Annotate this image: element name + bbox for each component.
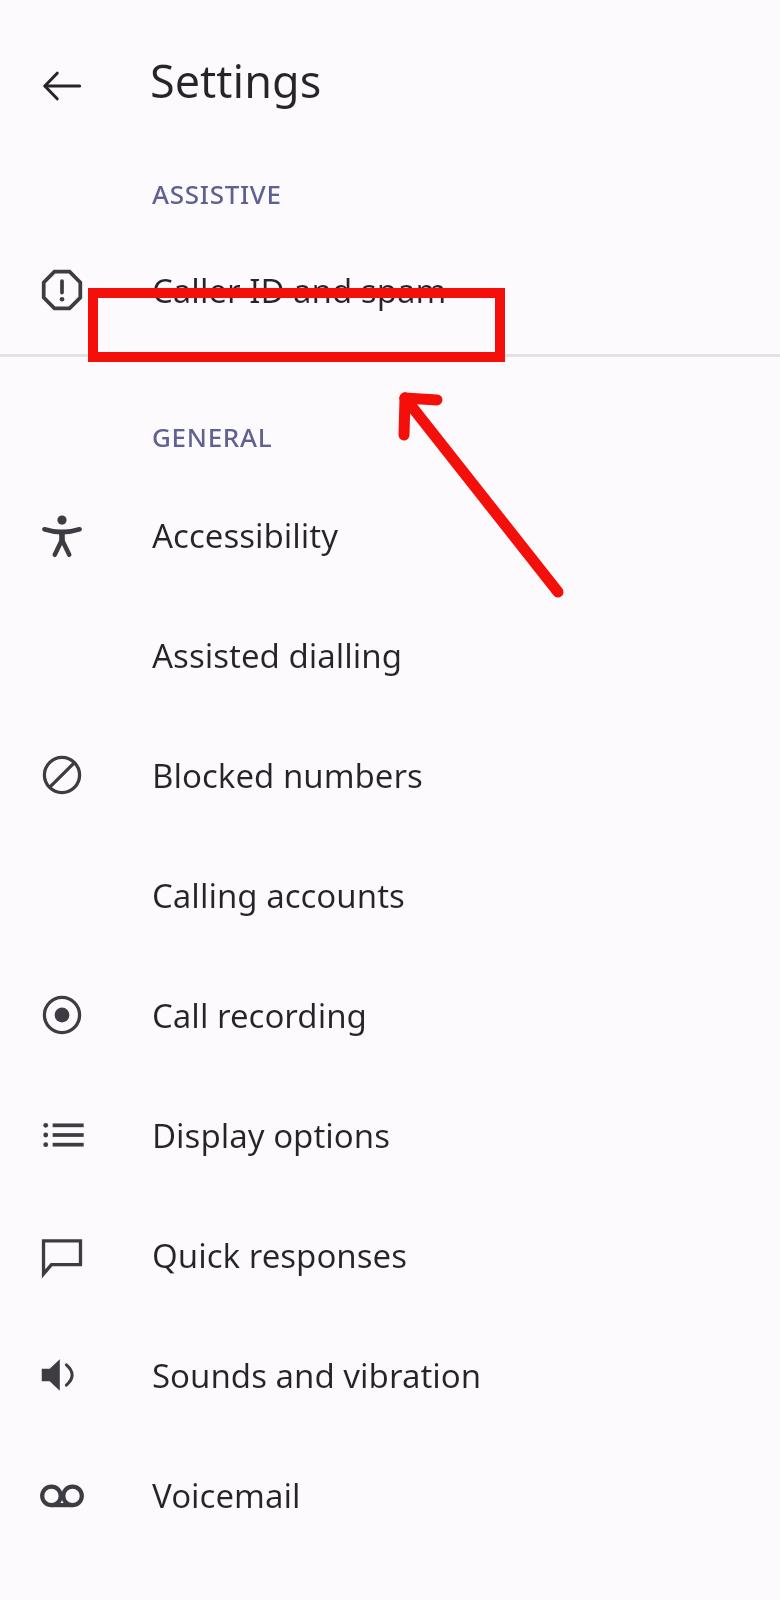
staticText: Blocked numbers [152,753,423,798]
button[interactable]: Back [28,52,96,120]
button[interactable]: Call recording [0,955,780,1075]
staticText: Caller ID and spam [152,268,447,313]
staticText: Quick responses [152,1233,407,1278]
button[interactable]: Blocked numbers [0,715,780,835]
staticText: Voicemail [152,1473,301,1518]
staticText: GENERAL [152,419,273,454]
button[interactable]: Display options [0,1075,780,1195]
button[interactable]: Accessibility [0,475,780,595]
staticText: Call recording [152,993,367,1038]
button[interactable]: Assisted dialling [0,595,780,715]
staticText: Accessibility [152,513,339,558]
button[interactable]: Quick responses [0,1195,780,1315]
staticText: Sounds and vibration [152,1353,482,1398]
button[interactable]: Voicemail [0,1435,780,1555]
staticText: Assisted dialling [152,633,402,678]
button[interactable]: Calling accounts [0,835,780,955]
staticText: Calling accounts [152,873,405,918]
button[interactable]: Caller ID and spam [0,226,780,354]
button[interactable]: Sounds and vibration [0,1315,780,1435]
staticText: Display options [152,1113,390,1158]
staticText: Settings [150,50,322,111]
staticText: ASSISTIVE [152,176,282,211]
